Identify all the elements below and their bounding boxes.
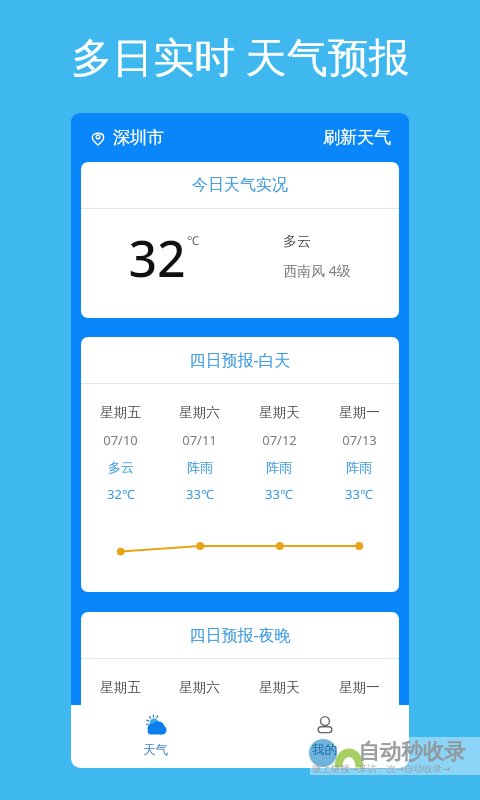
staticText: 四日预报-夜晚	[189, 624, 291, 646]
staticText: 西南风 4级	[283, 261, 351, 280]
staticText: 32℃	[107, 485, 135, 503]
staticText: 07/13	[342, 431, 377, 449]
staticText: 天气	[143, 742, 168, 758]
staticText: 33℃	[345, 485, 373, 503]
staticText: 32	[128, 224, 186, 292]
staticText: 我的	[312, 742, 337, 758]
staticText: 四日预报-白天	[189, 349, 291, 371]
staticText: 深圳市	[113, 127, 164, 148]
staticText: 多云	[283, 233, 311, 251]
staticText: ℃	[187, 232, 199, 248]
staticText: 阵雨	[266, 459, 292, 475]
staticText: 我的	[312, 742, 337, 758]
other: Weather	[144, 715, 167, 738]
staticText: 33℃	[186, 485, 214, 503]
staticText: 07/11	[182, 431, 217, 449]
staticText: 多云	[108, 459, 134, 475]
button[interactable]: Location	[91, 127, 164, 148]
staticText: 星期一	[339, 404, 380, 421]
staticText: 星期一	[339, 679, 380, 696]
staticText: 多日实时 天气预报	[71, 28, 410, 84]
other: Location	[91, 131, 105, 145]
button[interactable]: Profile	[240, 705, 409, 768]
staticText: 星期五	[100, 679, 141, 696]
staticText: 33℃	[265, 485, 293, 503]
staticText: 星期天	[259, 679, 300, 696]
staticText: 07/12	[262, 431, 297, 449]
staticText: 微上链接→来访一次→自动收录→	[312, 763, 450, 775]
staticText: 阵雨	[187, 459, 213, 475]
staticText: 星期天	[259, 404, 300, 421]
staticText: 星期六	[179, 404, 220, 421]
staticText: 今日天气实况	[192, 175, 288, 195]
staticText: 星期六	[179, 679, 220, 696]
staticText: 阵雨	[346, 459, 372, 475]
staticText: 自动秒收录	[358, 738, 466, 765]
staticText: 07/10	[103, 431, 138, 449]
staticText: 刷新天气	[323, 127, 391, 148]
button[interactable]: 刷新天气	[323, 127, 391, 148]
button[interactable]: Weather	[71, 705, 240, 768]
other: Profile	[314, 715, 336, 737]
staticText: 星期五	[100, 404, 141, 421]
